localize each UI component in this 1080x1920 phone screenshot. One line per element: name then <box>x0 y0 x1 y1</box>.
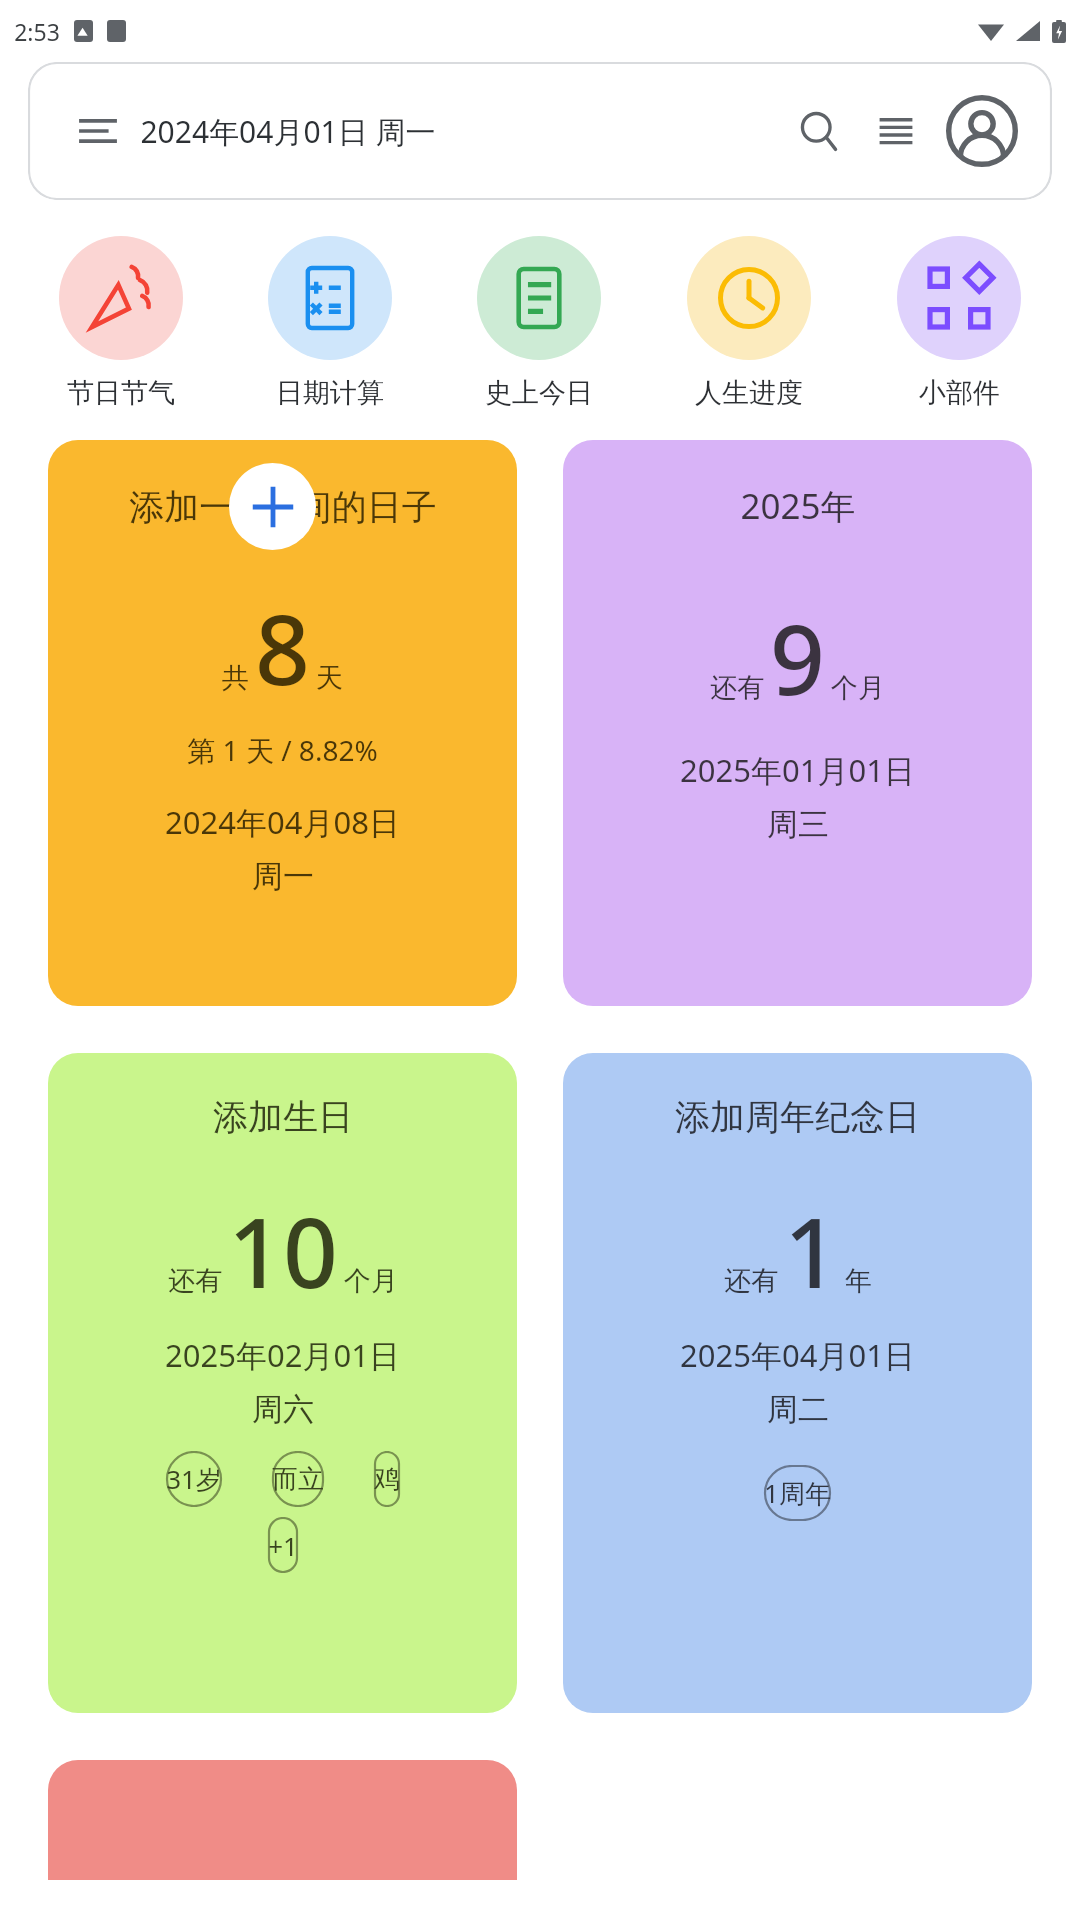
button[interactable]: Account <box>946 95 1018 167</box>
staticText: 2:53 <box>14 16 60 47</box>
staticText: +1 <box>268 1528 298 1563</box>
button[interactable]: 人生进度 <box>644 236 854 410</box>
button[interactable]: List view <box>876 111 916 151</box>
staticText: 2025年 <box>740 482 856 530</box>
staticText: 2025年02月01日 <box>165 1334 400 1376</box>
button[interactable]: 添加一段…间的日子 <box>48 440 517 1006</box>
staticText: 8 <box>255 582 310 713</box>
staticText: 9 <box>770 592 825 723</box>
button[interactable]: 2025年 <box>563 440 1032 1006</box>
staticText: 31岁 <box>166 1461 222 1497</box>
button[interactable]: 小部件 <box>854 236 1064 410</box>
button[interactable]: 史上今日 <box>434 236 644 410</box>
staticText: 天 <box>316 661 343 695</box>
staticText: 还有 <box>710 671 764 705</box>
button[interactable]: Menu <box>76 109 120 153</box>
button[interactable]: +1 <box>248 1517 318 1573</box>
button[interactable]: 节日节气 <box>16 236 225 410</box>
staticText: 人生进度 <box>695 376 803 410</box>
staticText: 添加生日 <box>213 1095 353 1139</box>
staticText: 共 <box>222 661 249 695</box>
button[interactable]: 添加周年纪念日 <box>563 1053 1032 1713</box>
staticText: 还有 <box>724 1264 778 1298</box>
staticText: 第 1 天 / 8.82% <box>187 731 378 769</box>
staticText: 周一 <box>252 857 314 896</box>
staticText: 个月 <box>344 1264 398 1298</box>
button[interactable]: Search <box>796 108 842 154</box>
staticText: 鸡 <box>374 1463 400 1496</box>
staticText: 1周年 <box>764 1475 831 1511</box>
staticText: 还有 <box>168 1264 222 1298</box>
staticText: 周三 <box>767 805 829 844</box>
staticText: 2024年04月01日 周一 <box>140 111 436 152</box>
button[interactable]: Add <box>229 463 316 550</box>
staticText: 日期计算 <box>276 376 384 410</box>
staticText: 添加一段…间的日子 <box>129 482 437 530</box>
button[interactable]: 1周年 <box>744 1465 851 1521</box>
button[interactable]: 日期计算 <box>225 236 434 410</box>
staticText: 2025年01月01日 <box>680 749 915 791</box>
staticText: 2024年04月08日 <box>165 801 400 843</box>
staticText: 周二 <box>767 1390 829 1429</box>
button[interactable]: 31岁 <box>146 1451 242 1507</box>
button[interactable]: 而立 <box>252 1451 344 1507</box>
button[interactable] <box>48 1760 517 1880</box>
staticText: 周六 <box>252 1390 314 1429</box>
staticText: 10 <box>228 1185 338 1316</box>
staticText: 节日节气 <box>67 376 175 410</box>
button[interactable]: Menu <box>28 62 1052 200</box>
button[interactable]: 添加生日 <box>48 1053 517 1713</box>
staticText: 个月 <box>831 671 885 705</box>
button[interactable]: 鸡 <box>354 1451 420 1507</box>
staticText: 2025年04月01日 <box>680 1334 915 1376</box>
staticText: 而立 <box>272 1463 324 1496</box>
staticText: 史上今日 <box>485 376 593 410</box>
staticText: 年 <box>845 1264 872 1298</box>
staticText: 1 <box>784 1185 839 1316</box>
staticText: 添加周年纪念日 <box>675 1095 920 1139</box>
staticText: 小部件 <box>919 376 1000 410</box>
